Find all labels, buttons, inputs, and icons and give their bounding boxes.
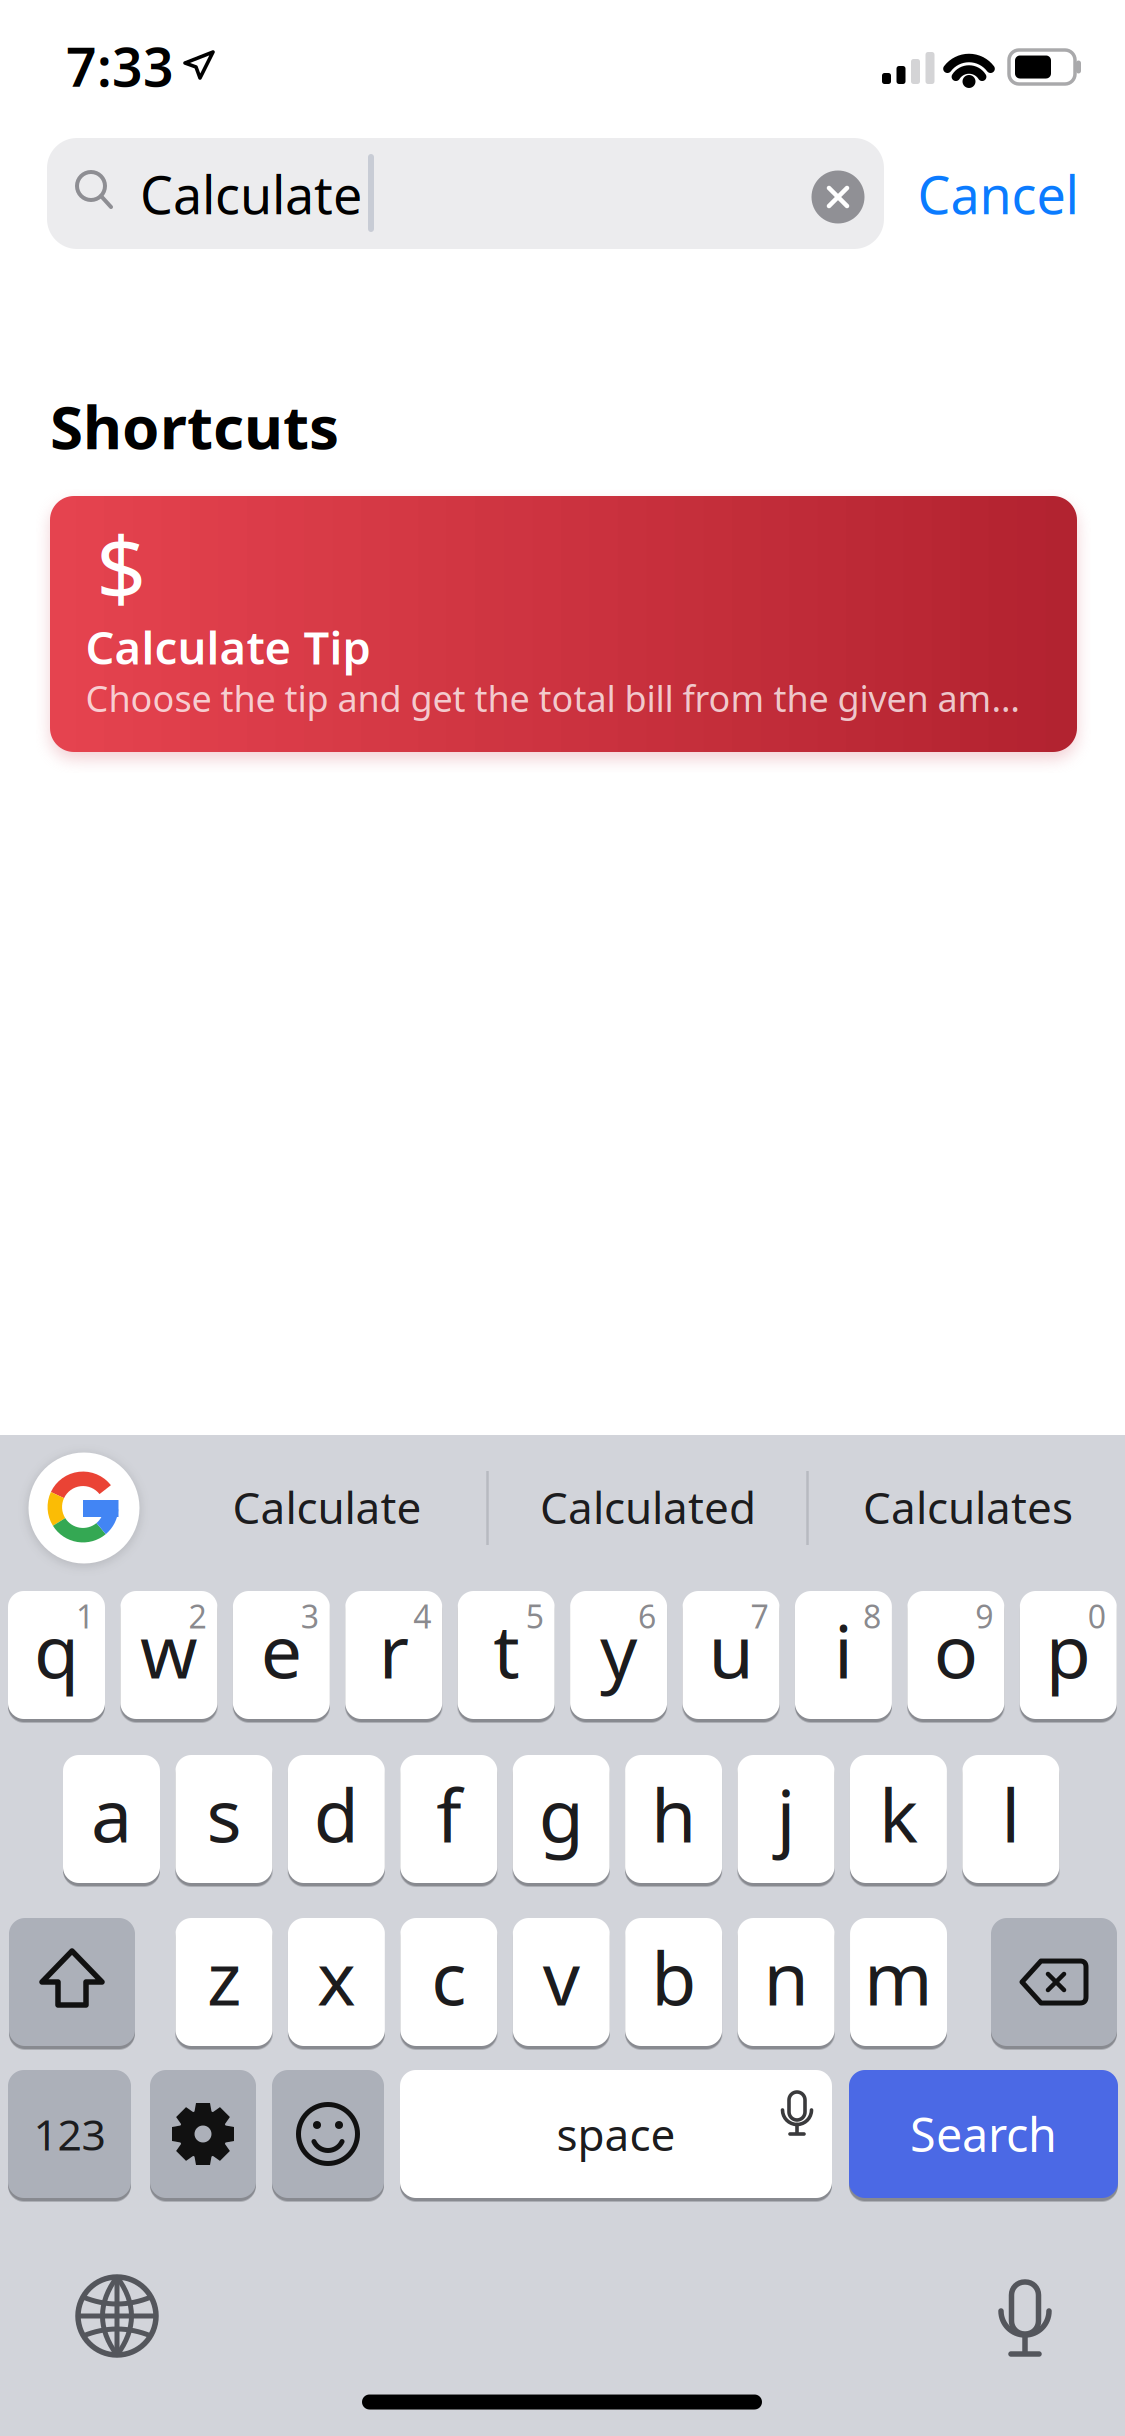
button[interactable]: Calculates — [863, 1478, 1073, 1536]
button[interactable]: t — [458, 1591, 555, 1719]
button[interactable]: w — [120, 1591, 217, 1719]
staticText: Calculates — [863, 1478, 1073, 1536]
button[interactable]: g — [513, 1755, 610, 1883]
staticText: 4 — [413, 1595, 431, 1637]
button[interactable]: b — [625, 1918, 722, 2046]
staticText: 1 — [76, 1595, 94, 1637]
staticText: x — [317, 1928, 356, 2026]
button[interactable]: Shift — [9, 1918, 135, 2046]
staticText: y — [600, 1601, 637, 1699]
button[interactable]: k — [850, 1755, 947, 1883]
staticText: 8 — [863, 1595, 881, 1637]
staticText: m — [864, 1928, 933, 2026]
staticText: p — [1046, 1601, 1091, 1699]
staticText: v — [543, 1928, 580, 2026]
staticText: u — [708, 1601, 753, 1699]
staticText: l — [1001, 1765, 1020, 1863]
button[interactable]: y — [570, 1591, 667, 1719]
staticText: k — [879, 1765, 918, 1863]
staticText: h — [651, 1765, 696, 1863]
button[interactable]: p — [1020, 1591, 1117, 1719]
button[interactable]: Search — [47, 138, 884, 249]
button[interactable]: o — [907, 1591, 1004, 1719]
button[interactable]: Calculated — [540, 1478, 756, 1536]
staticText: g — [539, 1765, 584, 1863]
button[interactable]: Search — [849, 2070, 1118, 2198]
button[interactable]: x — [288, 1918, 385, 2046]
button[interactable]: d — [288, 1755, 385, 1883]
button[interactable]: q — [8, 1591, 105, 1719]
button[interactable]: Cancel — [917, 159, 1078, 229]
staticText: s — [206, 1765, 241, 1863]
button[interactable]: Voice typing — [0, 0, 1125, 2436]
button[interactable]: a — [63, 1755, 160, 1883]
staticText: d — [314, 1765, 359, 1863]
staticText: 7:33 — [66, 31, 174, 101]
button[interactable]: j — [737, 1755, 834, 1883]
button[interactable]: $ — [50, 496, 1077, 752]
button[interactable]: r — [345, 1591, 442, 1719]
staticText: j — [776, 1765, 795, 1863]
staticText: z — [207, 1928, 241, 2026]
staticText: Calculated — [540, 1478, 756, 1536]
staticText: space — [556, 2105, 675, 2163]
staticText: 2 — [188, 1595, 206, 1637]
staticText: Calculate — [140, 159, 362, 229]
button[interactable]: v — [513, 1918, 610, 2046]
staticText: Calculate Tip — [85, 617, 370, 677]
button[interactable]: 123 — [8, 2070, 131, 2198]
button[interactable]: Next keyboard — [0, 0, 1125, 2436]
staticText: t — [493, 1601, 519, 1699]
staticText: a — [91, 1765, 132, 1863]
staticText: f — [436, 1765, 461, 1863]
staticText: Shortcuts — [50, 386, 339, 466]
button[interactable]: f — [400, 1755, 497, 1883]
staticText: 9 — [975, 1595, 993, 1637]
staticText: w — [140, 1601, 198, 1699]
button[interactable]: Emoji — [272, 2070, 384, 2198]
staticText: 123 — [33, 2106, 105, 2162]
button[interactable]: m — [850, 1918, 947, 2046]
button[interactable]: u — [682, 1591, 779, 1719]
button[interactable]: space — [400, 2070, 832, 2198]
button[interactable]: i — [795, 1591, 892, 1719]
staticText: Choose the tip and get the total bill fr… — [85, 674, 1019, 722]
button[interactable]: Clear text — [0, 0, 1125, 2436]
staticText: 7 — [750, 1595, 768, 1637]
staticText: c — [431, 1928, 466, 2026]
staticText: $ — [96, 508, 146, 624]
staticText: 5 — [526, 1595, 544, 1637]
staticText: e — [261, 1601, 302, 1699]
staticText: i — [834, 1601, 853, 1699]
button[interactable]: Calculate — [232, 1478, 421, 1536]
button[interactable]: Dictation — [0, 0, 1125, 2436]
button[interactable]: n — [738, 1918, 835, 2046]
button[interactable]: Keyboard settings — [150, 2070, 256, 2198]
staticText: n — [764, 1928, 809, 2026]
button[interactable]: Delete — [991, 1918, 1117, 2046]
staticText: 3 — [301, 1595, 319, 1637]
staticText: b — [651, 1928, 696, 2026]
staticText: Cancel — [917, 159, 1078, 229]
staticText: 0 — [1088, 1595, 1106, 1637]
button[interactable]: h — [625, 1755, 722, 1883]
button[interactable]: Google search — [0, 0, 1125, 2436]
staticText: o — [934, 1601, 978, 1699]
button[interactable]: c — [400, 1918, 497, 2046]
staticText: Calculate — [232, 1478, 421, 1536]
staticText: Search — [910, 2103, 1057, 2165]
staticText: q — [34, 1601, 79, 1699]
staticText: 6 — [638, 1595, 656, 1637]
button[interactable]: s — [175, 1755, 272, 1883]
button[interactable]: z — [175, 1918, 272, 2046]
button[interactable]: l — [962, 1755, 1059, 1883]
staticText: r — [379, 1601, 409, 1699]
button[interactable]: e — [233, 1591, 330, 1719]
